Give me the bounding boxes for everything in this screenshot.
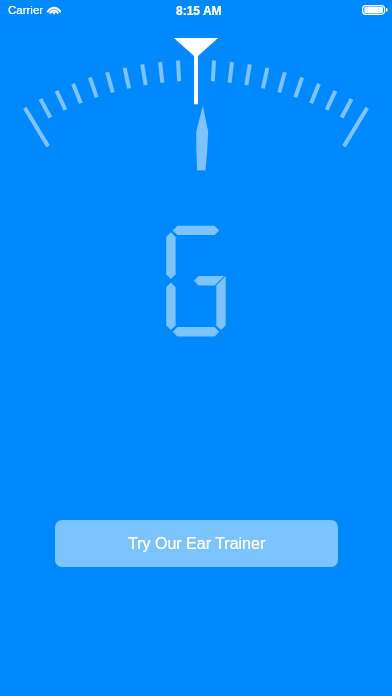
button[interactable]: Try Our Ear Trainer [55,520,338,567]
staticText: Carrier [8,4,44,17]
other: Battery [362,5,388,16]
staticText: 8:15 AM [176,4,222,17]
staticText: Try Our Ear Trainer [128,535,266,553]
other: Wi-Fi [47,5,61,15]
